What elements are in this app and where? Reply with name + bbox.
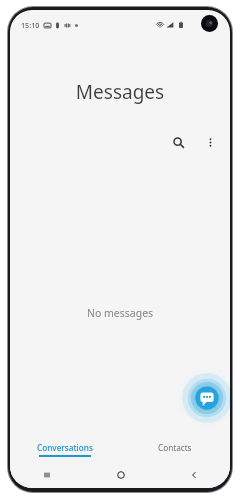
button[interactable]: Back xyxy=(157,462,230,488)
staticText: Conversations xyxy=(37,442,93,453)
button[interactable]: New conversation xyxy=(176,367,230,429)
button[interactable]: Home xyxy=(84,462,157,488)
button[interactable]: Search xyxy=(166,130,190,154)
button[interactable]: Contacts xyxy=(120,436,230,462)
staticText: Contacts xyxy=(158,442,192,453)
staticText: Messages xyxy=(10,79,230,105)
button[interactable]: Recents xyxy=(10,462,84,488)
staticText: No messages xyxy=(10,306,230,320)
button[interactable]: More options xyxy=(199,131,221,153)
button[interactable]: Conversations xyxy=(10,436,120,462)
staticText: 15:10 xyxy=(21,20,40,30)
